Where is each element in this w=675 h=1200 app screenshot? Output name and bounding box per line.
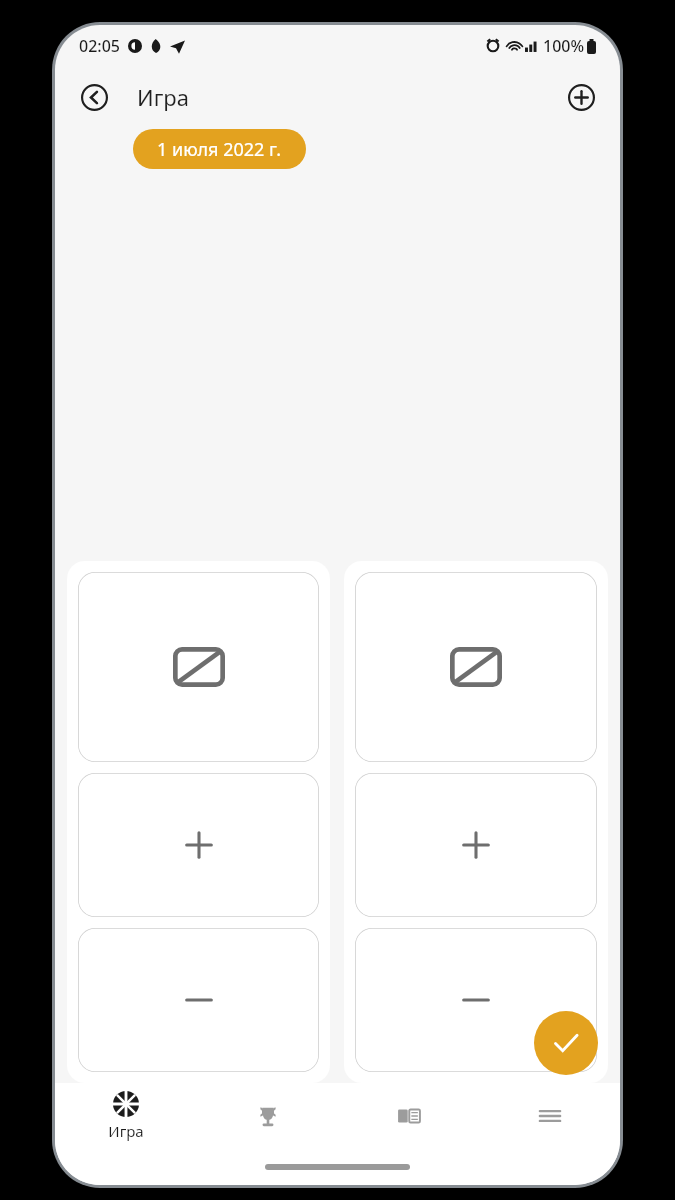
- staticText: 1 июля 2022 г.: [157, 137, 282, 162]
- staticText: Игра: [137, 82, 189, 112]
- button[interactable]: Back: [73, 76, 115, 118]
- staticText: 02:05: [79, 35, 120, 57]
- staticText: 100%: [543, 35, 585, 57]
- staticText: Игра: [108, 1121, 144, 1141]
- button[interactable]: Achievements: [197, 1083, 338, 1149]
- button[interactable]: Decrease score: [78, 928, 319, 1072]
- button[interactable]: Decrease score: [355, 928, 597, 1072]
- button[interactable]: Игра: [55, 1083, 197, 1149]
- button[interactable]: Team photo: [355, 572, 597, 762]
- button[interactable]: 1 июля 2022 г.: [133, 129, 306, 169]
- button[interactable]: Team photo: [78, 572, 319, 762]
- button[interactable]: Increase score: [355, 773, 597, 917]
- button[interactable]: Increase score: [78, 773, 319, 917]
- button[interactable]: Menu: [479, 1083, 620, 1149]
- button[interactable]: Add: [560, 76, 602, 118]
- button[interactable]: Confirm: [534, 1011, 598, 1075]
- button[interactable]: Rules: [338, 1083, 479, 1149]
